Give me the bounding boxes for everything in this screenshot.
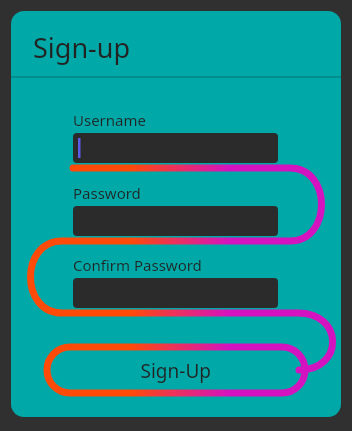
- button[interactable]: Sign-Up: [47, 347, 305, 393]
- button[interactable]: Password input field: [73, 206, 278, 236]
- button[interactable]: Username input field: [73, 133, 278, 163]
- button[interactable]: Confirm Password input field: [73, 278, 278, 308]
